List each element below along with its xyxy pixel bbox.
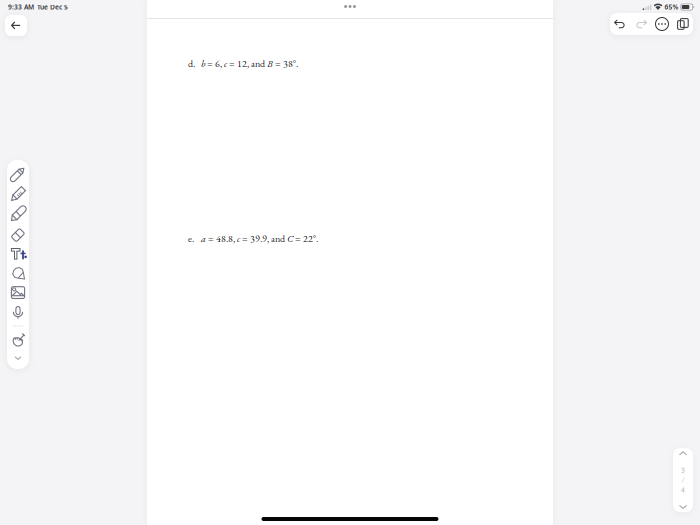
staticText: 3 xyxy=(681,466,685,475)
staticText: a = 48.8, c = 39.9, and C = 22°. xyxy=(201,232,318,245)
button[interactable]: Insert image xyxy=(7,283,29,302)
staticText: / xyxy=(682,476,684,484)
staticText: d. xyxy=(188,57,195,70)
button[interactable]: Palm rejection xyxy=(7,330,29,350)
button[interactable]: Undo xyxy=(609,13,630,34)
button[interactable]: Previous page xyxy=(673,449,693,458)
staticText: 9:33 AM xyxy=(8,3,34,11)
staticText: b = 6, c = 12, and B = 38°. xyxy=(201,57,298,70)
staticText: e. xyxy=(188,232,194,245)
staticText: 65% xyxy=(664,3,678,11)
button[interactable]: Collapse toolbar xyxy=(7,350,29,366)
button[interactable]: Next page xyxy=(673,502,693,511)
button[interactable]: Highlighter xyxy=(7,204,29,224)
button[interactable]: Pages xyxy=(672,13,693,34)
button[interactable]: Record audio xyxy=(7,302,29,322)
button[interactable]: Lasso select xyxy=(7,263,29,283)
button[interactable]: Multitasking options xyxy=(147,0,553,18)
button[interactable]: Pencil xyxy=(7,184,29,204)
staticText: 4 xyxy=(681,485,685,494)
button[interactable]: Pen xyxy=(7,164,29,184)
button[interactable]: More options xyxy=(651,13,672,34)
button[interactable]: Text xyxy=(7,244,29,263)
button[interactable]: Back xyxy=(5,15,27,36)
button[interactable]: Redo xyxy=(630,13,651,34)
button[interactable]: Eraser xyxy=(7,224,29,244)
staticText: Tue Dec 5 xyxy=(37,3,68,11)
